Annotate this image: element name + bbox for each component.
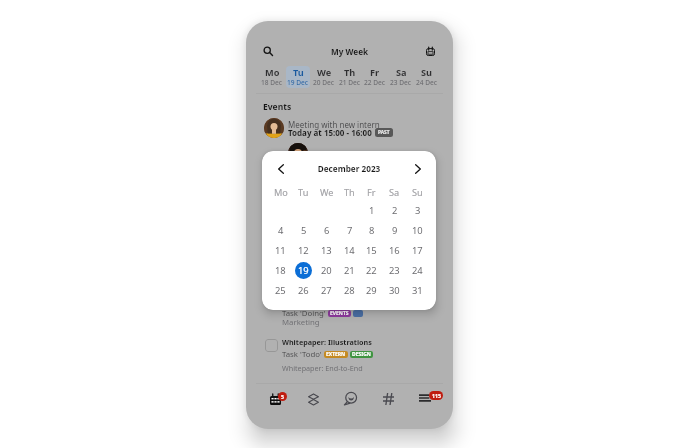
button[interactable]: 7 xyxy=(341,222,358,239)
button[interactable]: 31 xyxy=(409,282,426,299)
button[interactable]: 26 xyxy=(295,282,312,299)
button[interactable]: Th xyxy=(338,66,362,88)
button[interactable]: Fr xyxy=(363,66,387,88)
staticText: 29 xyxy=(366,284,377,297)
button[interactable]: 20 xyxy=(318,262,335,279)
staticText: 26 xyxy=(298,284,309,297)
staticText: 12 xyxy=(298,244,309,257)
staticText: 15 xyxy=(366,244,377,257)
button[interactable]: Su xyxy=(415,66,439,88)
button[interactable]: 12 xyxy=(295,242,312,259)
staticText: Th xyxy=(344,186,355,199)
button[interactable]: Boards xyxy=(302,390,324,408)
button[interactable]: We xyxy=(312,66,336,88)
button[interactable]: Tu xyxy=(286,66,310,88)
staticText: Task 'Doing' xyxy=(282,308,326,319)
button[interactable]: 11 xyxy=(272,242,289,259)
staticText: Tu xyxy=(293,66,304,79)
staticText: Marketing xyxy=(282,317,320,328)
button[interactable]: 9 xyxy=(386,222,403,239)
staticText: 17 xyxy=(412,244,423,257)
staticText: Th xyxy=(344,66,356,79)
button[interactable]: 6 xyxy=(318,222,335,239)
staticText: My Week xyxy=(331,46,369,57)
button[interactable]: Sa xyxy=(389,66,413,88)
staticText: 24 xyxy=(412,264,423,277)
staticText: 1 xyxy=(369,204,375,217)
button[interactable]: Previous month xyxy=(272,160,289,177)
button[interactable]: 16 xyxy=(386,242,403,259)
button[interactable]: Chat xyxy=(339,389,361,407)
staticText: 115 xyxy=(432,392,441,399)
staticText: Tu xyxy=(298,186,309,199)
staticText: 24 Dec xyxy=(416,78,438,87)
button[interactable]: 18 xyxy=(272,262,289,279)
staticText: 5 xyxy=(281,393,284,400)
button[interactable]: 3 xyxy=(409,202,426,219)
staticText: Events xyxy=(263,101,292,113)
button[interactable]: Inbox xyxy=(417,390,445,406)
staticText: Su xyxy=(412,186,423,199)
staticText: December 2023 xyxy=(289,163,409,174)
button[interactable]: 23 xyxy=(386,262,403,279)
staticText: Whitepaper: End-to-End xyxy=(282,363,363,373)
staticText: 20 xyxy=(321,264,332,277)
staticText: EXTERN xyxy=(326,351,346,358)
staticText: Task 'Todo' xyxy=(282,349,322,360)
button[interactable]: 28 xyxy=(341,282,358,299)
staticText: Meeting with new intern xyxy=(288,119,380,130)
staticText: 21 xyxy=(344,264,355,277)
button[interactable]: 13 xyxy=(318,242,335,259)
button[interactable]: 24 xyxy=(409,262,426,279)
staticText: Fr xyxy=(370,66,380,79)
button[interactable]: Open calendar xyxy=(422,43,438,59)
button[interactable]: 29 xyxy=(363,282,380,299)
button[interactable]: Agenda xyxy=(267,390,289,406)
staticText: Mo xyxy=(274,186,288,199)
staticText: Whitepaper: Illustrations xyxy=(282,337,372,347)
staticText: 31 xyxy=(412,284,423,297)
staticText: Su xyxy=(421,66,433,79)
button[interactable]: 15 xyxy=(363,242,380,259)
staticText: 20 Dec xyxy=(313,78,335,87)
button[interactable]: 14 xyxy=(341,242,358,259)
staticText: 19 xyxy=(298,264,309,277)
staticText: We xyxy=(317,66,332,79)
staticText: 13 xyxy=(321,244,332,257)
staticText: 9 xyxy=(392,224,398,237)
button[interactable]: Channels xyxy=(377,390,399,408)
button[interactable]: 22 xyxy=(363,262,380,279)
staticText: EVENTS xyxy=(330,310,349,317)
staticText: 23 xyxy=(389,264,400,277)
button[interactable]: 19 xyxy=(295,262,312,279)
staticText: 10 xyxy=(412,224,423,237)
button[interactable]: Next month xyxy=(409,160,426,177)
button[interactable]: 10 xyxy=(409,222,426,239)
staticText: 22 Dec xyxy=(364,78,386,87)
button[interactable]: 30 xyxy=(386,282,403,299)
button[interactable]: 25 xyxy=(272,282,289,299)
button[interactable]: 5 xyxy=(295,222,312,239)
staticText: 5 xyxy=(301,224,307,237)
button[interactable]: 2 xyxy=(386,202,403,219)
button[interactable]: Mo xyxy=(260,66,284,88)
staticText: 27 xyxy=(321,284,332,297)
button[interactable]: 4 xyxy=(272,222,289,239)
button[interactable]: 8 xyxy=(363,222,380,239)
button[interactable]: Complete task xyxy=(265,339,278,352)
staticText: 22 xyxy=(366,264,377,277)
button[interactable]: 1 xyxy=(363,202,380,219)
staticText: Fr xyxy=(367,186,376,199)
staticText: Sa xyxy=(396,66,407,79)
staticText: DESIGN xyxy=(352,351,371,358)
button[interactable]: 17 xyxy=(409,242,426,259)
staticText: 6 xyxy=(324,224,330,237)
staticText: 14 xyxy=(344,244,355,257)
button[interactable]: Search xyxy=(260,43,276,59)
button[interactable]: 21 xyxy=(341,262,358,279)
button[interactable]: 27 xyxy=(318,282,335,299)
